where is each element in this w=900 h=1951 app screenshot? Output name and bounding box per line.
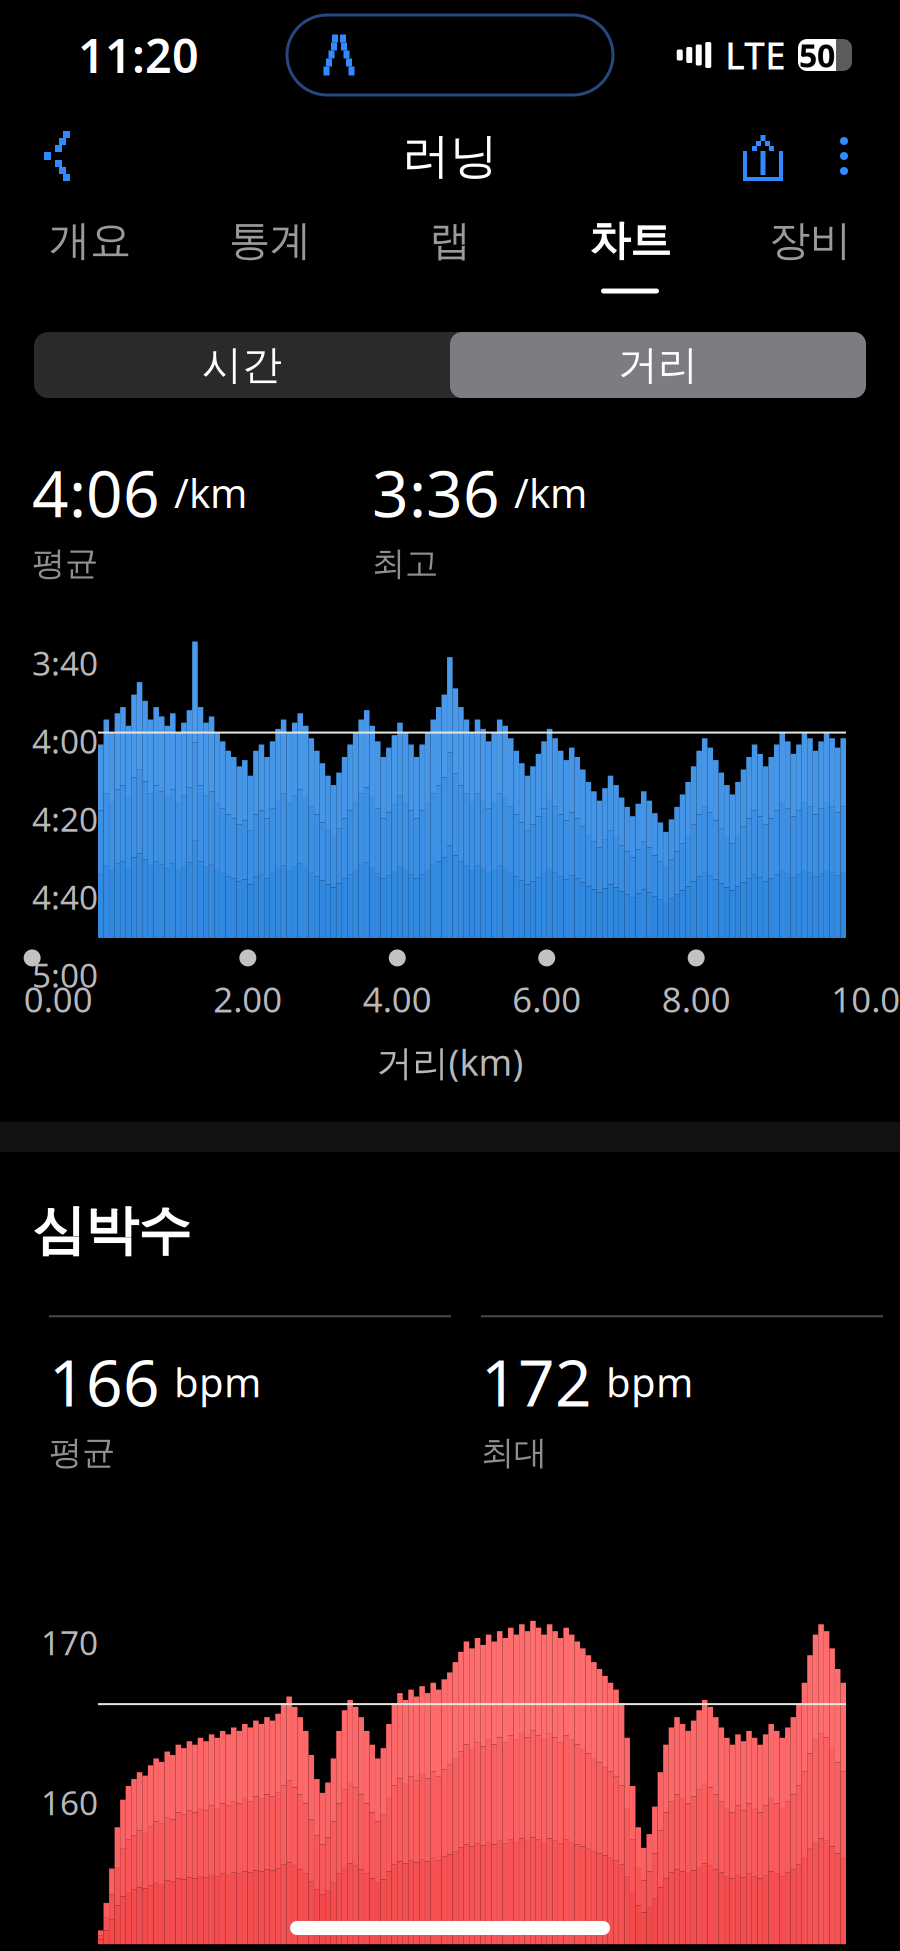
staticText: 4:20 — [32, 797, 98, 841]
button[interactable]: 랩 — [360, 202, 540, 302]
staticText: 4:06 — [32, 450, 160, 535]
staticText: 최고 — [372, 543, 438, 584]
staticText: 50 — [799, 34, 835, 76]
staticText: LTE — [725, 30, 786, 80]
button[interactable]: 개요 — [0, 202, 180, 302]
staticText: bpm — [164, 1355, 261, 1408]
staticText: 160 — [41, 1780, 98, 1824]
staticText: 평균 — [49, 1432, 115, 1473]
staticText: 심박수 — [32, 1198, 191, 1263]
staticText: 5:00 — [32, 953, 98, 997]
staticText: 거리 — [618, 340, 698, 389]
staticText: 4:40 — [32, 875, 98, 919]
staticText: 최대 — [481, 1432, 547, 1473]
staticText: /km — [504, 466, 587, 519]
button[interactable]: 공유 — [720, 113, 806, 199]
staticText: 6.00 — [512, 976, 581, 1022]
staticText: 11:20 — [78, 24, 199, 86]
staticText: 랩 — [429, 215, 470, 266]
staticText: 개요 — [49, 215, 131, 266]
staticText: 0.00 — [24, 976, 93, 1022]
staticText: 10.00 — [831, 976, 900, 1022]
staticText: 2.00 — [213, 976, 282, 1022]
staticText: 장비 — [769, 215, 851, 266]
staticText: 170 — [41, 1620, 98, 1664]
button[interactable]: 차트 — [540, 202, 720, 302]
staticText: 8.00 — [662, 976, 731, 1022]
button[interactable]: 통계 — [180, 202, 360, 302]
button[interactable]: 거리 — [450, 332, 866, 398]
staticText: 3:40 — [32, 641, 98, 685]
button[interactable]: 뒤로 — [14, 113, 100, 199]
staticText: 172 — [481, 1339, 592, 1424]
staticText: 차트 — [589, 215, 671, 266]
button[interactable]: 더보기 — [806, 113, 882, 199]
staticText: 거리(km) — [376, 1038, 523, 1086]
staticText: 3:36 — [372, 450, 500, 535]
staticText: 러닝 — [402, 126, 498, 185]
staticText: /km — [164, 466, 247, 519]
staticText: 166 — [49, 1339, 160, 1424]
staticText: 통계 — [229, 215, 311, 266]
staticText: 평균 — [32, 543, 98, 584]
staticText: 4.00 — [363, 976, 432, 1022]
button[interactable]: 장비 — [720, 202, 900, 302]
staticText: 시간 — [202, 340, 282, 389]
button[interactable]: 시간 — [34, 332, 450, 398]
staticText: bpm — [596, 1355, 693, 1408]
staticText: 4:00 — [32, 719, 98, 763]
